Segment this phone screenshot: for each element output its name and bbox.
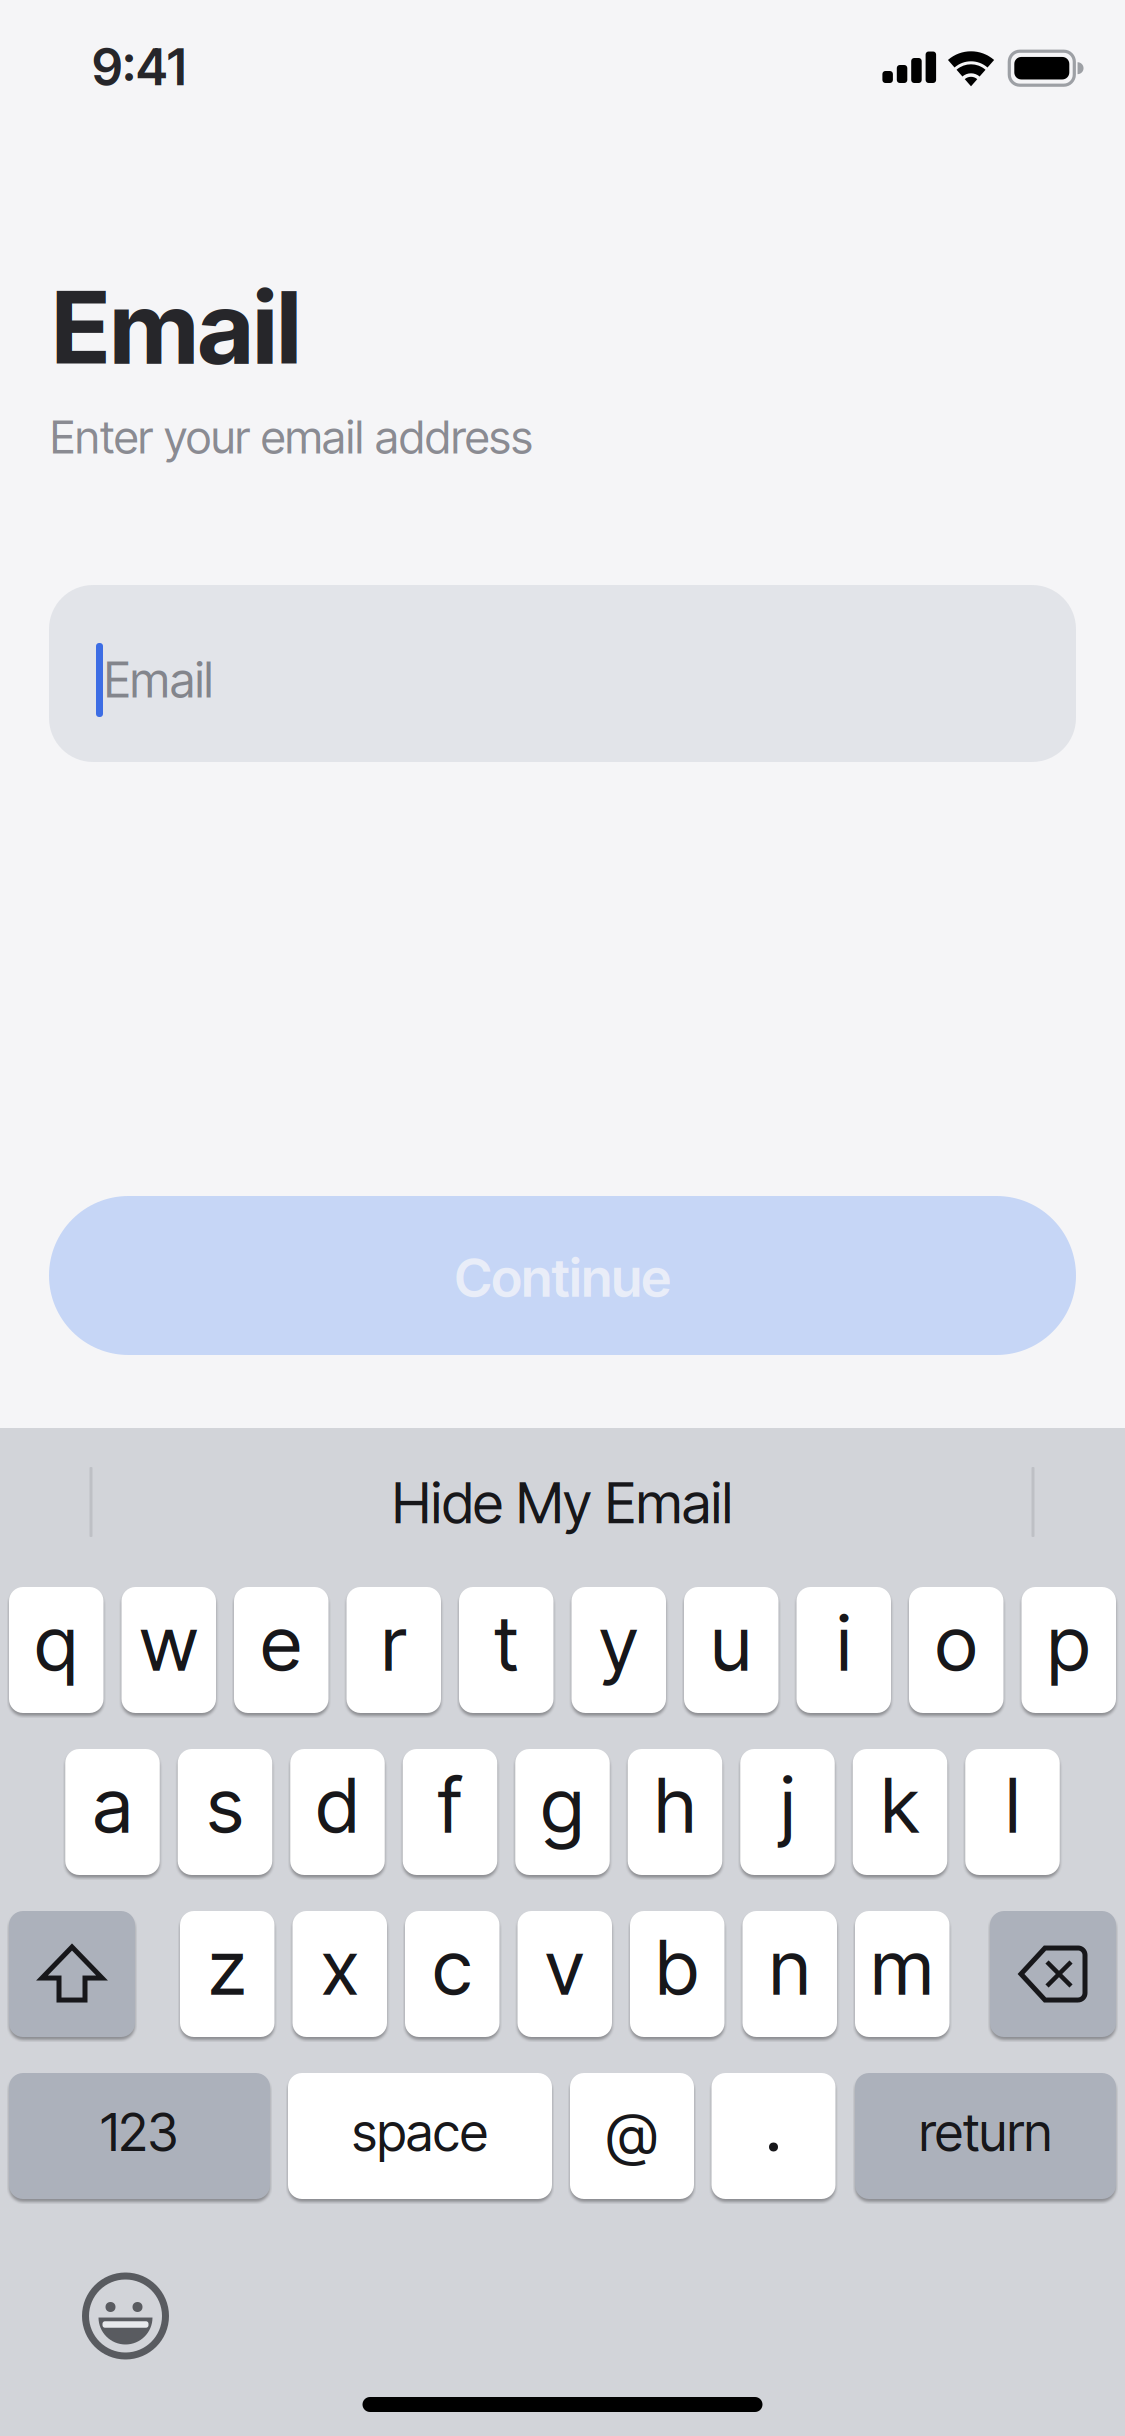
button[interactable]: return xyxy=(855,2073,1116,2199)
staticText: space xyxy=(352,2100,488,2163)
button[interactable]: Delete xyxy=(990,1911,1116,2037)
staticText: k xyxy=(881,1759,919,1851)
button[interactable]: r xyxy=(346,1587,441,1713)
staticText: @ xyxy=(606,2099,658,2169)
staticText: f xyxy=(438,1759,462,1851)
button[interactable]: g xyxy=(515,1749,610,1875)
button[interactable]: space xyxy=(288,2073,552,2199)
button[interactable]: a xyxy=(65,1749,160,1875)
button[interactable]: Emoji xyxy=(85,2276,165,2356)
staticText: 123 xyxy=(100,2100,178,2163)
button[interactable]: i xyxy=(796,1587,891,1713)
button[interactable]: x xyxy=(292,1911,387,2037)
button[interactable]: p xyxy=(1021,1587,1116,1713)
button[interactable]: s xyxy=(178,1749,272,1875)
staticText: Enter your email address xyxy=(50,409,533,465)
button[interactable]: n xyxy=(742,1911,837,2037)
button[interactable]: 123 xyxy=(9,2073,270,2199)
button[interactable]: e xyxy=(234,1587,328,1713)
button[interactable]: q xyxy=(9,1587,103,1713)
button[interactable]: y xyxy=(571,1587,666,1713)
button[interactable]: t xyxy=(459,1587,553,1713)
button[interactable]: l xyxy=(965,1749,1060,1875)
button[interactable]: z xyxy=(180,1911,274,2037)
staticText: Email xyxy=(104,651,213,709)
staticText: n xyxy=(769,1921,810,2013)
staticText: m xyxy=(871,1921,934,2013)
staticText: r xyxy=(381,1597,406,1689)
button[interactable]: k xyxy=(853,1749,947,1875)
button[interactable]: f xyxy=(403,1749,497,1875)
staticText: d xyxy=(316,1759,359,1851)
staticText: 9:41 xyxy=(92,37,186,97)
staticText: i xyxy=(837,1597,851,1689)
button[interactable]: c xyxy=(405,1911,499,2037)
staticText: e xyxy=(261,1597,302,1689)
staticText: q xyxy=(35,1597,78,1689)
button[interactable]: d xyxy=(290,1749,385,1875)
staticText: b xyxy=(656,1921,699,2013)
button[interactable]: o xyxy=(909,1587,1003,1713)
button[interactable]: w xyxy=(121,1587,216,1713)
staticText: l xyxy=(1005,1759,1019,1851)
button[interactable]: Hide My Email xyxy=(162,1448,962,1558)
button[interactable]: b xyxy=(630,1911,724,2037)
staticText: Continue xyxy=(454,1245,670,1309)
staticText: g xyxy=(541,1759,584,1851)
staticText: h xyxy=(654,1759,695,1851)
button[interactable]: Period xyxy=(711,2073,835,2199)
button[interactable]: u xyxy=(684,1587,778,1713)
staticText: j xyxy=(780,1759,794,1851)
staticText: v xyxy=(545,1921,584,2013)
staticText: p xyxy=(1047,1597,1090,1689)
staticText: t xyxy=(494,1597,518,1689)
staticText: w xyxy=(140,1597,198,1689)
staticText: Email xyxy=(52,266,301,387)
button[interactable]: m xyxy=(855,1911,949,2037)
staticText: u xyxy=(711,1597,752,1689)
button[interactable]: j xyxy=(740,1749,835,1875)
staticText: c xyxy=(433,1921,472,2013)
staticText: z xyxy=(208,1921,246,2013)
button[interactable]: v xyxy=(517,1911,612,2037)
staticText: x xyxy=(321,1921,358,2013)
staticText: o xyxy=(935,1597,977,1689)
button[interactable]: Continue xyxy=(49,1196,1076,1355)
staticText: y xyxy=(599,1597,638,1689)
staticText: a xyxy=(93,1759,132,1851)
button[interactable]: @ xyxy=(570,2073,694,2199)
button[interactable]: Email xyxy=(49,585,1076,762)
staticText: Hide My Email xyxy=(392,1469,733,1537)
staticText: return xyxy=(919,2100,1052,2163)
button[interactable]: Shift xyxy=(9,1911,135,2037)
staticText: s xyxy=(207,1759,243,1851)
button[interactable]: h xyxy=(628,1749,722,1875)
